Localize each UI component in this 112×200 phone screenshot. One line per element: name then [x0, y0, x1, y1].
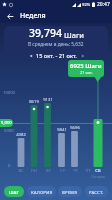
staticText: 10000 — [3, 90, 15, 96]
button[interactable]: Next week — [78, 51, 87, 60]
button[interactable]: ВРЕМЯ — [58, 186, 82, 197]
staticText: ПН — [31, 168, 37, 173]
staticText: ПТ — [85, 168, 91, 173]
staticText: 9131 — [43, 97, 53, 103]
staticText: 8619 — [29, 99, 39, 105]
staticText: В среднем в день: 5,632 — [28, 41, 84, 48]
staticText: 4382 — [16, 132, 26, 138]
staticText: 6925 Шаги — [70, 62, 102, 70]
staticText: Неделя — [20, 11, 46, 21]
staticText: ШАГ — [9, 189, 19, 195]
staticText: ВТ — [46, 168, 51, 173]
staticText: 20:47 — [97, 1, 110, 8]
staticText: 5000 — [4, 128, 14, 134]
staticText: 5,000 — [1, 120, 12, 126]
staticText: ЧТ — [73, 168, 78, 173]
button[interactable]: Back — [5, 11, 16, 22]
staticText: 0 — [8, 163, 11, 169]
staticText: 15 окт. - 21 окт. — [36, 52, 77, 60]
button[interactable]: РАССТ. — [85, 186, 108, 197]
staticText: КАЛОРИЯ — [31, 189, 53, 195]
staticText: ВС — [18, 168, 24, 173]
button[interactable]: ШАГ — [4, 186, 24, 197]
staticText: 92% — [82, 2, 91, 8]
staticText: СР — [60, 168, 65, 173]
staticText: 5841 — [57, 127, 67, 133]
staticText: СБ — [95, 168, 101, 174]
staticText: Шаги — [64, 30, 84, 40]
button[interactable]: КАЛОРИЯ — [27, 186, 56, 197]
staticText: 39,794 — [29, 26, 62, 40]
staticText: 5696 — [70, 125, 80, 131]
staticText: Сегодня — [91, 174, 105, 179]
staticText: 21 окт. — [80, 70, 93, 75]
staticText: РАССТ. — [89, 189, 104, 195]
staticText: ВРЕМЯ — [62, 189, 78, 195]
button[interactable]: Previous week — [26, 51, 35, 60]
